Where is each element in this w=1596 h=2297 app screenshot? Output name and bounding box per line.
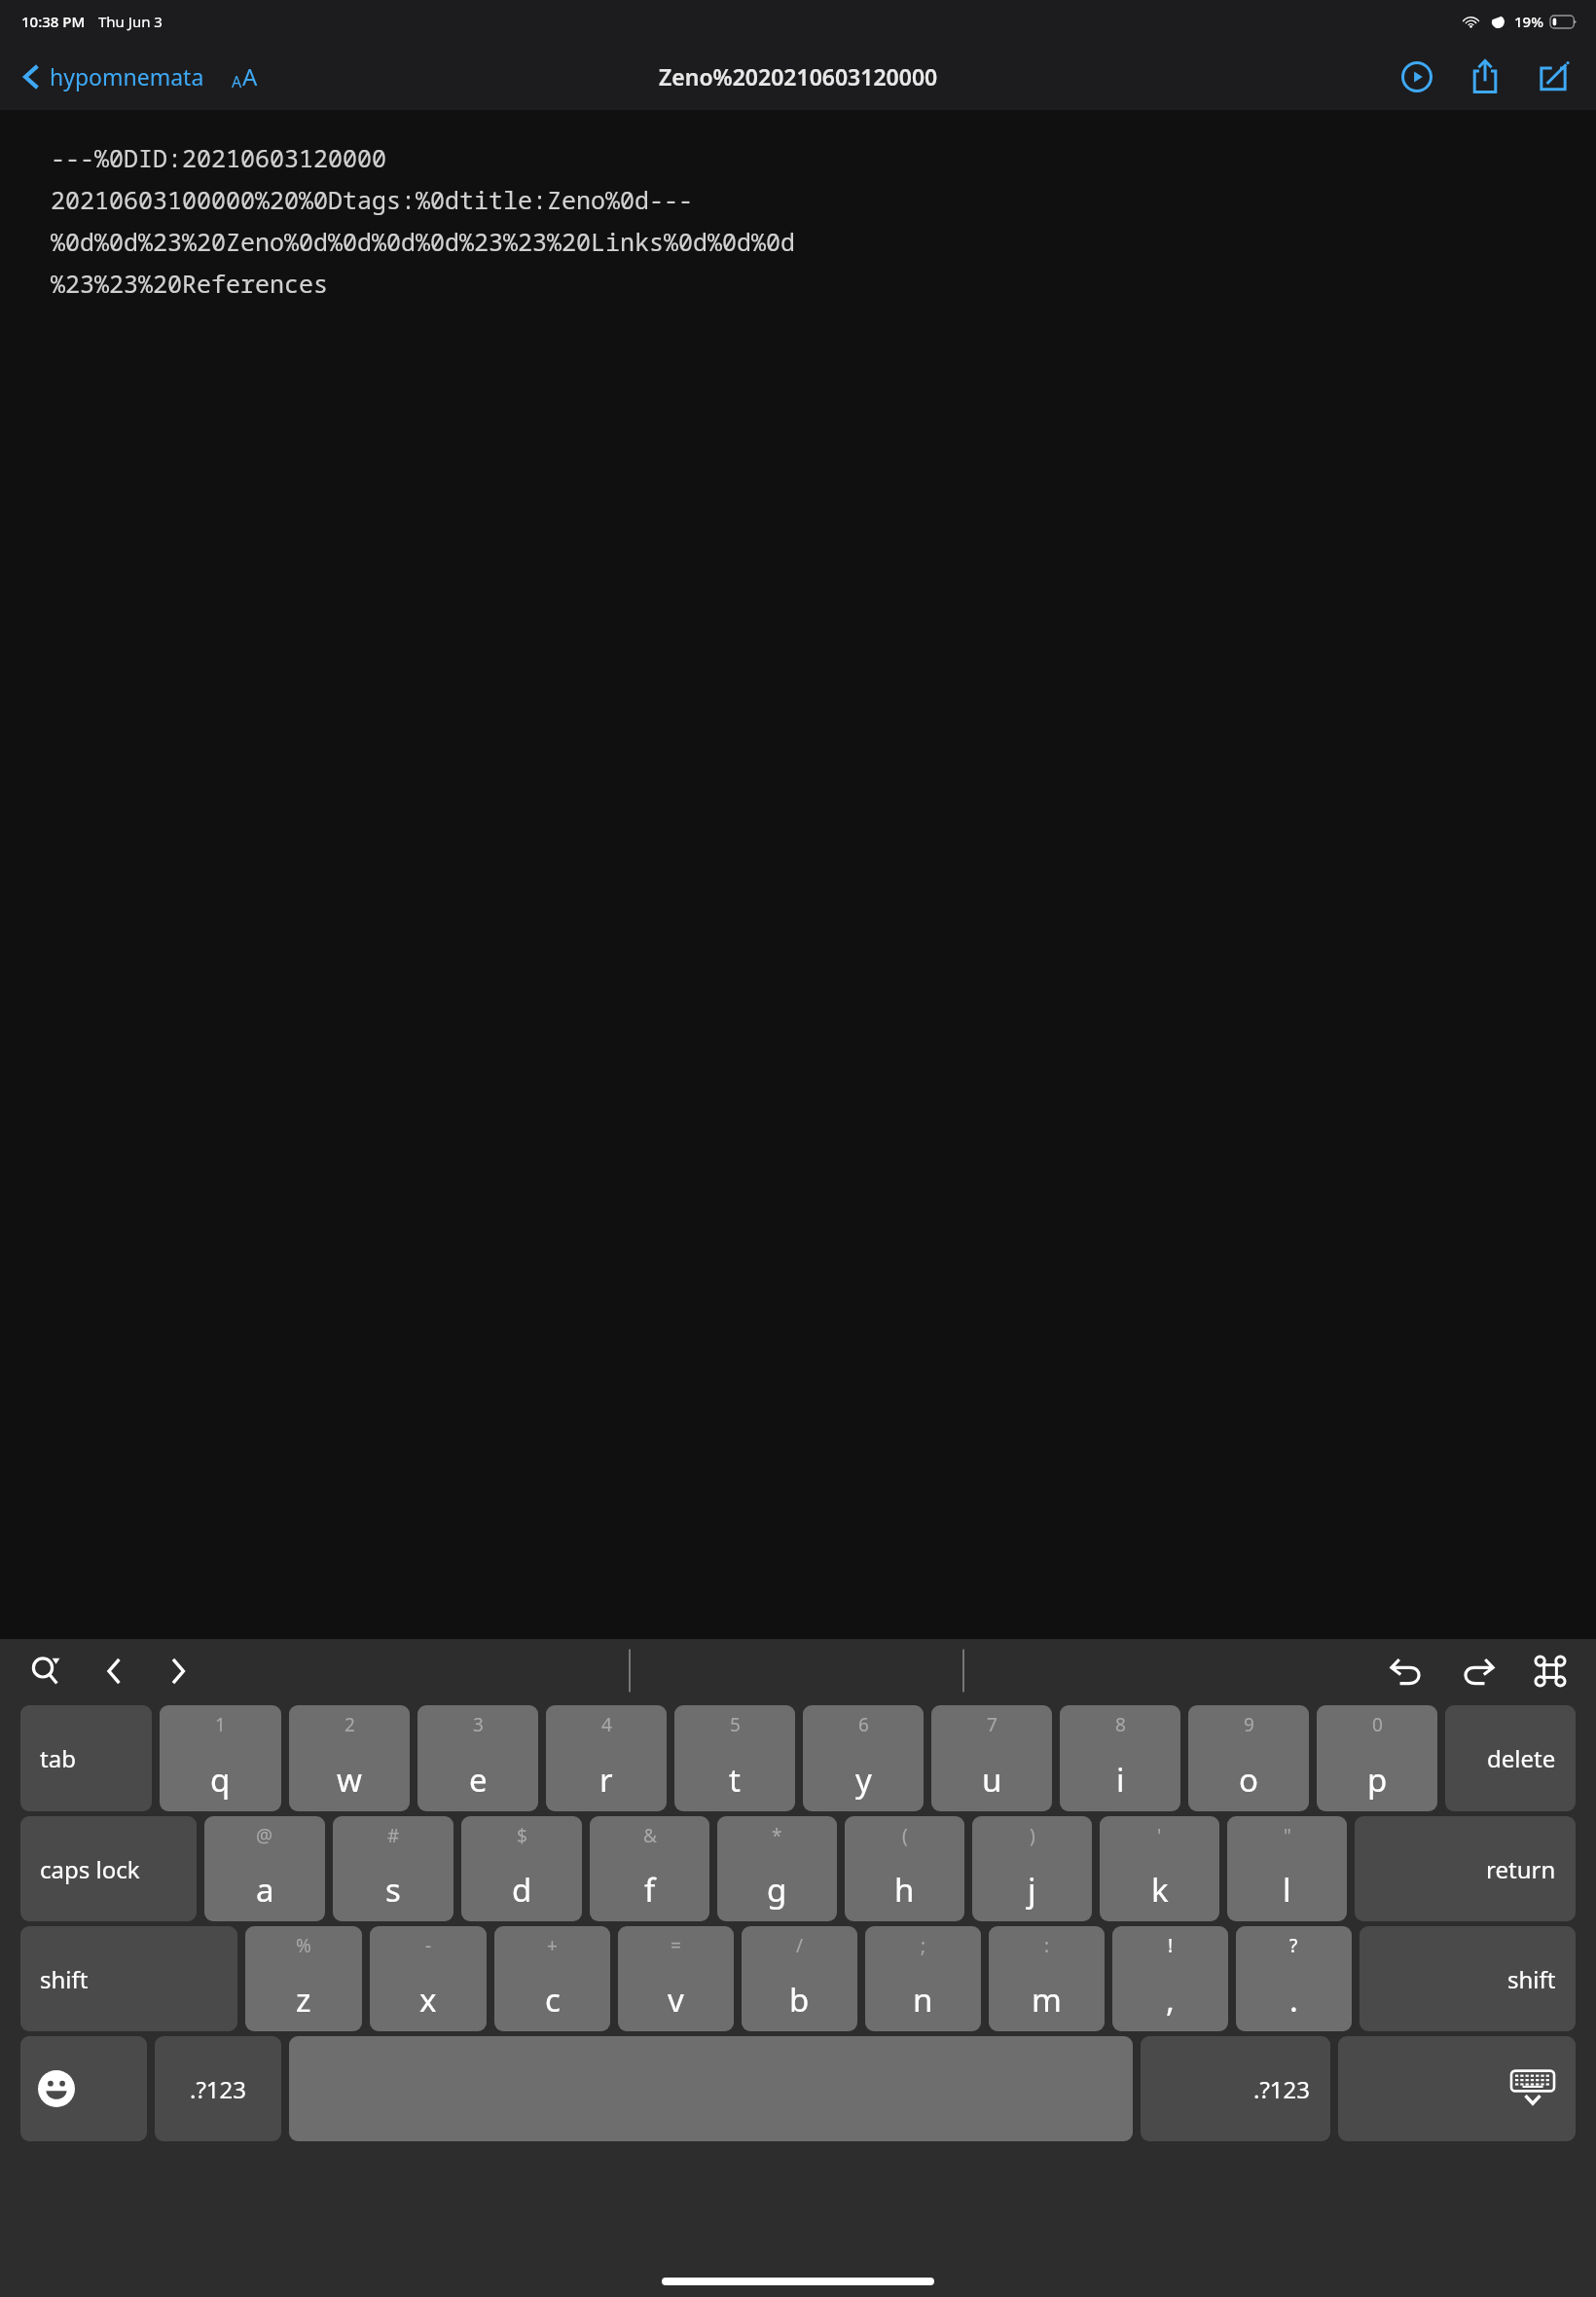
button[interactable]: return <box>1355 1816 1576 1921</box>
button[interactable]: ? <box>1236 1926 1352 2031</box>
button[interactable]: @ <box>204 1816 325 1921</box>
staticText: h <box>894 1868 915 1912</box>
button[interactable]: ; <box>865 1926 981 2031</box>
button[interactable]: Hide keyboard <box>1338 2036 1576 2141</box>
button[interactable]: 5 <box>674 1705 795 1811</box>
staticText: t <box>729 1758 741 1802</box>
button[interactable]: " <box>1227 1816 1347 1921</box>
button[interactable]: .?123 <box>1141 2036 1330 2141</box>
staticText: o <box>1239 1758 1258 1802</box>
button[interactable]: shift <box>1360 1926 1576 2031</box>
button[interactable]: 3 <box>417 1705 538 1811</box>
button[interactable]: 0 <box>1317 1705 1437 1811</box>
button[interactable]: 9 <box>1188 1705 1309 1811</box>
button[interactable]: ( <box>845 1816 964 1921</box>
staticText: . <box>1289 1978 1298 2022</box>
staticText: 2 <box>345 1712 355 1737</box>
staticText: A <box>242 60 258 92</box>
staticText: ---%0DID:20210603120000 <box>51 141 387 174</box>
staticText: * <box>772 1823 782 1848</box>
staticText: %0d%0d%23%20Zeno%0d%0d%0d%0d%23%23%20Lin… <box>51 225 796 258</box>
button[interactable]: ! <box>1112 1926 1228 2031</box>
button[interactable]: 1 <box>160 1705 281 1811</box>
button[interactable]: = <box>618 1926 734 2031</box>
button[interactable]: .?123 <box>155 2036 281 2141</box>
button[interactable]: Next <box>150 1643 206 1699</box>
staticText: m <box>1032 1978 1062 2022</box>
button[interactable]: $ <box>461 1816 582 1921</box>
button[interactable]: Search <box>18 1643 74 1699</box>
button[interactable]: Previous <box>86 1643 142 1699</box>
staticText: 4 <box>601 1712 612 1737</box>
staticText: " <box>1284 1823 1291 1848</box>
button[interactable]: 4 <box>546 1705 667 1811</box>
staticText: caps lock <box>40 1853 140 1885</box>
staticText: - <box>425 1933 432 1958</box>
staticText: / <box>796 1933 804 1958</box>
button[interactable]: # <box>333 1816 453 1921</box>
staticText: ' <box>1157 1823 1162 1848</box>
button[interactable]: shift <box>20 1926 237 2031</box>
staticText: j <box>1028 1868 1036 1912</box>
button[interactable]: 2 <box>289 1705 410 1811</box>
button[interactable]: ) <box>972 1816 1092 1921</box>
staticText: .?123 <box>1253 2073 1311 2105</box>
staticText: 8 <box>1115 1712 1126 1737</box>
button[interactable]: & <box>590 1816 709 1921</box>
staticText: 19% <box>1514 12 1543 31</box>
button[interactable]: Emoji <box>20 2036 147 2141</box>
staticText: %23%23%20References <box>51 267 329 300</box>
button[interactable]: 8 <box>1060 1705 1180 1811</box>
button[interactable]: Play <box>1394 54 1440 100</box>
button[interactable]: hypomnemata <box>16 54 212 99</box>
staticText: , <box>1166 1978 1175 2022</box>
staticText: s <box>385 1868 401 1912</box>
button[interactable]: / <box>742 1926 857 2031</box>
staticText: n <box>913 1978 933 2022</box>
button[interactable]: delete <box>1445 1705 1576 1811</box>
button[interactable]: * <box>717 1816 837 1921</box>
button[interactable]: : <box>989 1926 1105 2031</box>
staticText: d <box>512 1868 532 1912</box>
button[interactable]: Text size <box>226 53 264 100</box>
staticText: shift <box>40 1963 89 1995</box>
button[interactable]: % <box>245 1926 362 2031</box>
button[interactable]: + <box>494 1926 610 2031</box>
staticText: ( <box>902 1823 908 1848</box>
staticText: y <box>855 1758 872 1802</box>
staticText: r <box>599 1758 613 1802</box>
staticText: p <box>1367 1758 1388 1802</box>
button[interactable]: Shortcuts <box>1522 1643 1578 1699</box>
button[interactable]: caps lock <box>20 1816 197 1921</box>
staticText: i <box>1116 1758 1125 1802</box>
staticText: l <box>1283 1868 1291 1912</box>
button[interactable]: Redo <box>1450 1643 1506 1699</box>
button[interactable]: Compose <box>1530 54 1577 100</box>
button[interactable]: 6 <box>803 1705 924 1811</box>
button[interactable]: 7 <box>931 1705 1052 1811</box>
staticText: ; <box>921 1933 926 1958</box>
staticText: a <box>256 1868 274 1912</box>
button[interactable]: ' <box>1100 1816 1219 1921</box>
staticText: 7 <box>987 1712 997 1737</box>
button[interactable]: Undo <box>1378 1643 1434 1699</box>
button[interactable]: tab <box>20 1705 152 1811</box>
staticText: % <box>296 1933 311 1958</box>
staticText: $ <box>517 1823 527 1848</box>
staticText: 0 <box>1372 1712 1383 1737</box>
staticText: hypomnemata <box>50 61 204 91</box>
staticText: z <box>296 1978 311 2022</box>
staticText: + <box>547 1933 558 1958</box>
staticText: return <box>1486 1853 1556 1885</box>
button[interactable]: - <box>370 1926 487 2031</box>
staticText: Thu Jun 3 <box>98 12 163 31</box>
staticText: delete <box>1487 1742 1556 1774</box>
staticText: .?123 <box>190 2073 247 2105</box>
button[interactable]: Share <box>1462 54 1508 100</box>
staticText: 20210603100000%20%0Dtags:%0dtitle:Zeno%0… <box>51 183 694 216</box>
staticText: 6 <box>858 1712 869 1737</box>
button[interactable] <box>289 2036 1133 2141</box>
staticText: shift <box>1507 1963 1556 1995</box>
staticText: Zeno%2020210603120000 <box>659 61 938 91</box>
staticText: & <box>643 1823 657 1848</box>
